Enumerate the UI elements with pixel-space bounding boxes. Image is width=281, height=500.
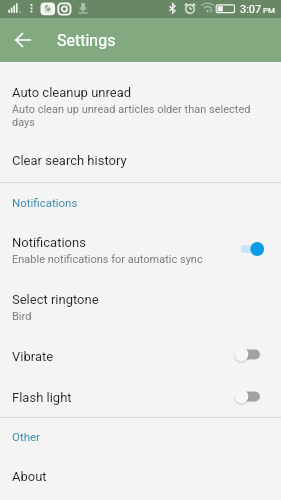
button[interactable]: Flash light — [0, 364, 281, 405]
button[interactable]: About — [0, 443, 281, 484]
staticText: Other — [12, 430, 41, 443]
staticText: Settings — [57, 31, 116, 50]
staticText: PM — [263, 6, 276, 15]
staticText: Notifications — [12, 235, 86, 250]
staticText: About — [12, 469, 47, 484]
staticText: Auto clean up unread articles older than… — [12, 103, 269, 128]
button[interactable]: Turn on — [240, 390, 269, 403]
staticText: Notifications — [12, 196, 78, 209]
staticText: Enable notifications for automatic sync — [12, 253, 203, 266]
button[interactable]: Auto cleanup unread — [0, 62, 281, 128]
button[interactable]: Back — [12, 29, 34, 51]
button[interactable]: Notifications — [0, 209, 281, 266]
button[interactable]: Turn off — [240, 235, 269, 263]
staticText: Clear search history — [12, 153, 127, 168]
button[interactable]: Clear search history — [0, 128, 281, 168]
button[interactable]: Vibrate — [0, 323, 281, 364]
staticText: Auto cleanup unread — [12, 85, 132, 100]
button[interactable]: Turn on — [240, 349, 269, 360]
button[interactable]: Select ringtone — [0, 266, 281, 323]
staticText: Flash light — [12, 390, 72, 405]
staticText: Select ringtone — [12, 292, 99, 307]
staticText: Bird — [12, 310, 32, 323]
staticText: 3:07 — [240, 3, 262, 16]
staticText: Vibrate — [12, 349, 54, 364]
